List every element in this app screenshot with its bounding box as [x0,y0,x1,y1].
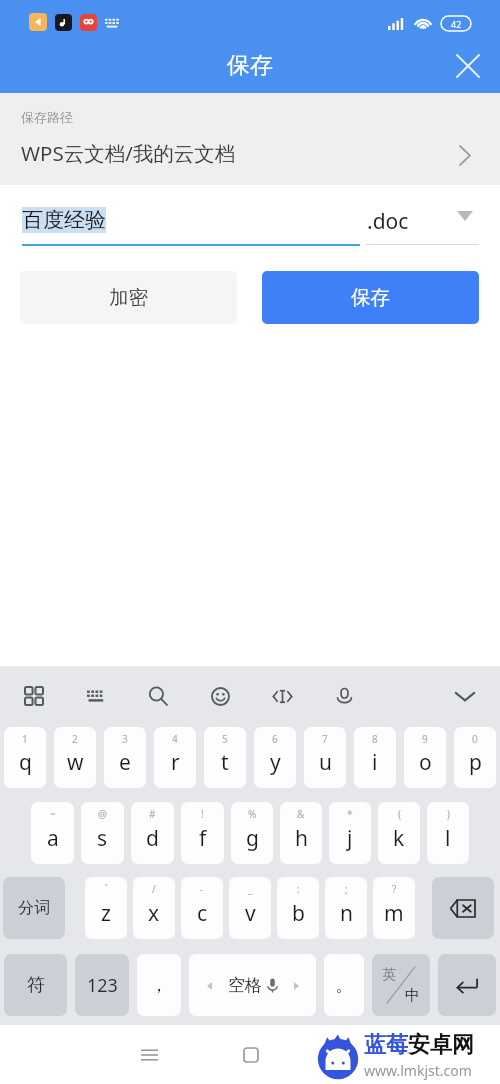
button[interactable]: ` [85,877,127,939]
button[interactable]: 9 [404,727,446,788]
button[interactable]: Clipboard [262,676,302,716]
button[interactable]: Search [138,676,178,716]
button[interactable]: - [181,877,223,939]
button[interactable]: _ [229,877,271,939]
staticText: 保存路径 [21,109,73,125]
button[interactable]: 7 [304,727,346,788]
button[interactable]: ) [427,802,469,864]
staticText: 5 [222,732,228,746]
button[interactable]: 123 [75,954,129,1016]
staticText: v [245,899,256,928]
button[interactable]: 加密 [20,271,237,324]
button[interactable]: Voice input [324,676,364,716]
button[interactable]: 3 [104,727,146,788]
button[interactable]: 空格 [189,954,316,1016]
staticText: 中 [405,986,420,1005]
staticText: x [148,899,160,928]
button[interactable]: ( [378,802,420,864]
button[interactable]: Home [229,1033,273,1077]
button[interactable]: 分词 [3,877,65,939]
staticText: e [119,748,131,777]
staticText: ( [398,807,401,821]
staticText: 百度经验 [22,207,106,233]
button[interactable]: Hide keyboard [445,676,485,716]
button[interactable]: Backspace [432,877,494,939]
staticText: i [372,748,378,777]
button[interactable]: 6 [254,727,296,788]
button[interactable]: ; [325,877,367,939]
button[interactable]: & [280,802,322,864]
button[interactable]: ~ [31,802,74,864]
button[interactable]: 。 [324,954,364,1016]
staticText: 保存 [351,285,390,310]
staticText: : [297,882,300,896]
button[interactable]: # [131,802,174,864]
button[interactable]: 保存 [262,271,479,324]
staticText: 加密 [109,285,148,310]
button[interactable]: Enter [438,954,496,1016]
staticText: ; [345,882,348,896]
staticText: 保存 [227,51,273,80]
button[interactable]: ? [373,877,415,939]
button[interactable]: Keyboard [76,676,116,716]
staticText: w [67,748,84,777]
staticText: / [152,882,156,896]
button[interactable]: * [329,802,371,864]
staticText: h [295,824,308,853]
button[interactable]: Recents [127,1033,171,1077]
staticText: d [146,824,159,853]
staticText: b [292,899,305,928]
staticText: s [97,824,108,853]
staticText: .doc [367,207,409,236]
button[interactable]: ， [137,954,181,1016]
staticText: c [197,899,208,928]
staticText: 符 [27,974,45,997]
button[interactable]: 1 [4,727,46,788]
button[interactable]: 0 [454,727,496,788]
staticText: 4 [172,732,178,746]
staticText: 7 [322,732,328,746]
button[interactable]: 英 [372,954,430,1016]
staticText: - [200,882,204,896]
button[interactable]: 符 [4,954,67,1016]
staticText: 空格 [228,975,262,996]
button[interactable]: : [277,877,319,939]
staticText: www.lmkjst.com [364,1061,472,1080]
staticText: _ [248,882,253,896]
staticText: m [384,899,404,928]
staticText: o [419,748,432,777]
button[interactable]: Emoji [200,676,240,716]
staticText: 英 [382,966,396,984]
button[interactable]: @ [81,802,124,864]
button[interactable]: Keyboard layout [14,676,54,716]
staticText: 123 [87,973,118,998]
button[interactable]: 8 [354,727,396,788]
staticText: ? [392,882,397,896]
staticText: 6 [272,732,278,746]
button[interactable]: ! [181,802,224,864]
button[interactable]: % [231,802,273,864]
button[interactable]: 4 [154,727,196,788]
staticText: WPS云文档/我的云文档 [21,139,236,167]
staticText: n [340,899,353,928]
button[interactable]: 保存路径 [0,93,500,185]
staticText: ~ [50,807,56,821]
button[interactable]: 5 [204,727,246,788]
staticText: 分词 [18,898,50,918]
button[interactable]: Close [446,44,490,88]
staticText: 9 [422,732,428,746]
staticText: u [319,748,332,777]
staticText: & [297,807,305,821]
staticText: ， [150,974,168,997]
staticText: l [445,824,451,853]
staticText: 蓝莓 [364,1031,408,1059]
staticText: ! [201,807,204,821]
staticText: g [246,824,259,853]
staticText: 1 [22,732,28,746]
staticText: f [199,824,207,853]
button[interactable]: 2 [54,727,96,788]
staticText: 0 [472,732,478,746]
staticText: k [393,824,405,853]
staticText: a [47,824,59,853]
button[interactable]: / [133,877,175,939]
